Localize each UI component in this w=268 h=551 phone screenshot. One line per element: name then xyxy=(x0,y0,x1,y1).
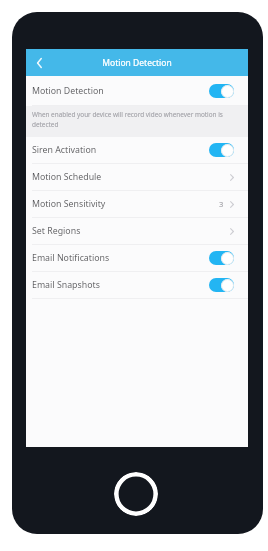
button[interactable]: Motion Detection xyxy=(26,76,248,105)
staticText: When enabled your device will record vid… xyxy=(32,110,228,129)
button[interactable]: Toggle xyxy=(209,84,234,98)
button[interactable]: Motion Sensitivity xyxy=(26,191,248,217)
button[interactable]: Toggle xyxy=(209,278,234,292)
button[interactable]: Back xyxy=(26,49,53,76)
button[interactable]: Toggle xyxy=(209,251,234,265)
staticText: Email Snapshots xyxy=(32,279,100,291)
button[interactable]: Home xyxy=(114,472,158,516)
staticText: Motion Detection xyxy=(102,57,172,69)
staticText: Motion Detection xyxy=(32,85,104,97)
button[interactable]: Siren Activation xyxy=(26,137,248,163)
button[interactable]: Email Snapshots xyxy=(26,272,248,298)
button[interactable]: Email Notifications xyxy=(26,245,248,271)
button[interactable]: Set Regions xyxy=(26,218,248,244)
button[interactable]: Motion Schedule xyxy=(26,164,248,190)
staticText: Motion Schedule xyxy=(32,171,102,183)
staticText: 3 xyxy=(219,199,224,209)
staticText: Email Notifications xyxy=(32,252,110,264)
button[interactable]: Toggle xyxy=(209,143,234,157)
staticText: Motion Sensitivity xyxy=(32,198,106,210)
staticText: Siren Activation xyxy=(32,144,97,156)
staticText: Set Regions xyxy=(32,225,81,237)
